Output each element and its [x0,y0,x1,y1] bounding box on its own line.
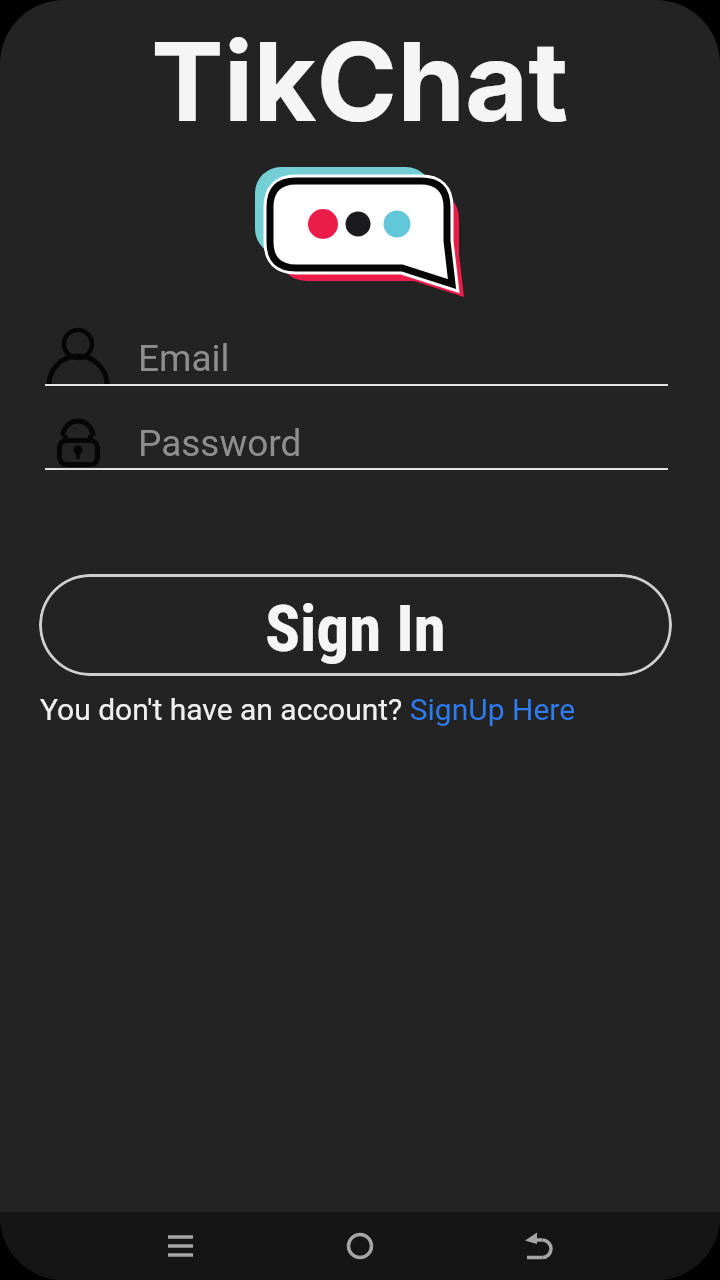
staticText: Sign In [265,591,446,667]
staticText: Email [138,337,230,380]
button[interactable]: Password [40,408,672,470]
button[interactable] [336,1222,384,1270]
button[interactable]: You don't have an account? SignUp Here [40,692,576,727]
button[interactable]: Email [40,320,672,386]
staticText: Password [138,422,302,465]
staticText: TikChat [151,15,569,147]
button[interactable] [516,1222,564,1270]
button[interactable] [157,1222,205,1270]
button[interactable]: Sign In [39,574,672,676]
